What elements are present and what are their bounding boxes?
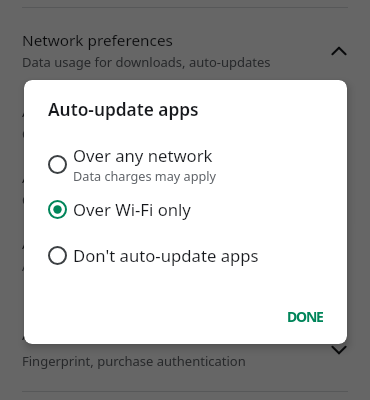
button[interactable]: App download preference — [0, 233, 370, 275]
staticText: Auto-play videos — [22, 167, 141, 188]
button[interactable]: Over Wi-Fi only — [24, 186, 347, 232]
staticText: Over any network — [73, 144, 213, 167]
button[interactable]: Auto-play videos — [0, 167, 370, 209]
staticText: DONE — [287, 307, 323, 326]
staticText: Don't auto-update apps — [73, 244, 259, 267]
staticText: Data usage for downloads, auto-updates — [22, 53, 271, 71]
button[interactable]: Authentication — [0, 324, 370, 370]
button[interactable]: Auto-update apps — [0, 101, 370, 143]
staticText: Over Wi-Fi only — [22, 191, 114, 209]
staticText: Ask me every time — [22, 257, 134, 275]
staticText: Auto-update apps — [48, 98, 199, 122]
other: Collapse — [328, 40, 350, 62]
staticText: Over Wi-Fi only — [73, 198, 191, 221]
staticText: Authentication — [22, 324, 128, 345]
staticText: Network preferences — [22, 30, 173, 51]
staticText: Over Wi-Fi only — [22, 125, 114, 143]
button[interactable]: Don't auto-update apps — [24, 232, 347, 278]
staticText: Data charges may apply — [73, 167, 217, 184]
staticText: App download preference — [22, 233, 208, 254]
staticText: Fingerprint, purchase authentication — [22, 352, 246, 370]
button[interactable]: DONE — [281, 301, 329, 332]
staticText: Auto-update apps — [22, 101, 151, 122]
button[interactable]: Over any network — [24, 142, 347, 186]
button[interactable]: Network preferences — [0, 30, 370, 71]
other: Expand — [328, 339, 350, 361]
